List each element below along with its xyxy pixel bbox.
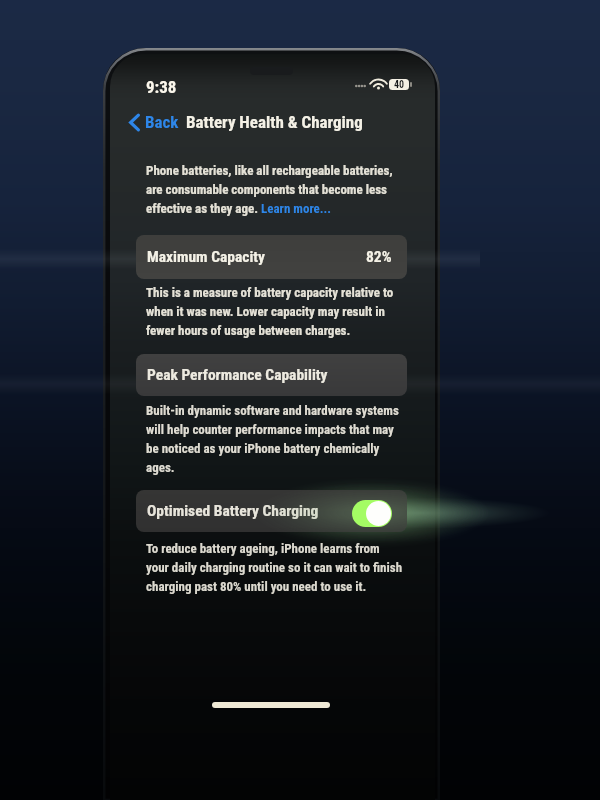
staticText: 9:38 [146,77,177,97]
staticText: Optimised Battery Charging [147,502,319,520]
button[interactable]: Optimised Battery Charging toggle [352,500,392,527]
button[interactable]: Optimised Battery Charging [136,490,407,532]
staticText: Maximum Capacity [147,248,265,266]
button[interactable]: Maximum Capacity [136,235,407,279]
staticText: Phone batteries, like all rechargeable b… [146,163,404,216]
button[interactable]: Back [129,110,179,134]
staticText: Battery Health & Charging [186,112,363,132]
staticText: Peak Performance Capability [147,366,328,384]
staticText: 40 [394,79,405,90]
other: Back [129,113,140,132]
staticText: Back [145,112,179,132]
staticText: This is a measure of battery capacity re… [146,285,404,338]
staticText: To reduce battery ageing, iPhone learns … [146,541,404,594]
button[interactable]: Peak Performance Capability [136,354,407,396]
staticText: 82% [366,248,392,266]
staticText: Built-in dynamic software and hardware s… [146,403,404,475]
